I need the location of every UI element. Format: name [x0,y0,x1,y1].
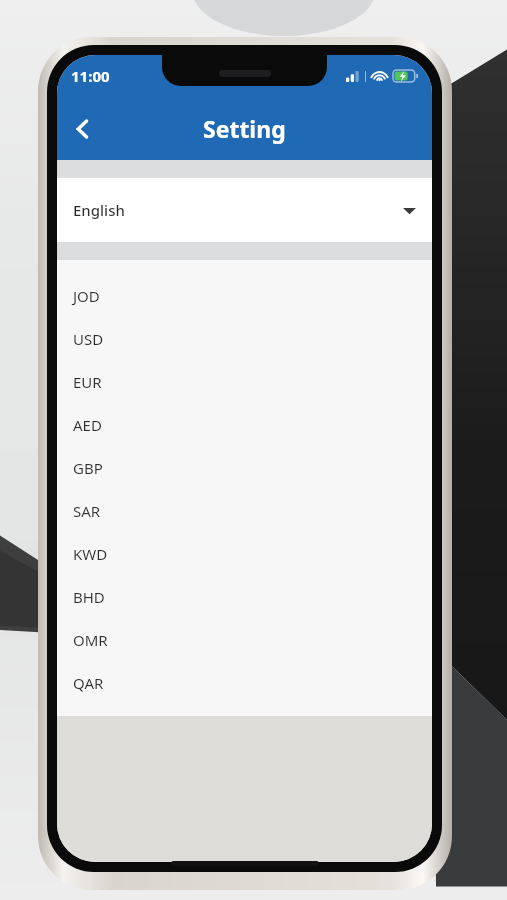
staticText: SAR [73,501,101,521]
button[interactable]: AED [57,403,432,446]
staticText: Setting [203,113,286,144]
button[interactable]: English [57,178,432,242]
staticText: BHD [73,587,105,607]
staticText: 11:00 [71,66,110,86]
button[interactable]: KWD [57,532,432,575]
button[interactable]: GBP [57,446,432,489]
staticText: GBP [73,458,103,478]
button[interactable]: Back [61,107,105,151]
staticText: KWD [73,544,108,564]
staticText: AED [73,415,102,435]
button[interactable]: OMR [57,618,432,661]
staticText: USD [73,329,104,349]
staticText: JOD [73,286,100,306]
button[interactable]: QAR [57,661,432,704]
staticText: QAR [73,673,104,693]
staticText: English [73,200,125,220]
button[interactable]: BHD [57,575,432,618]
button[interactable]: SAR [57,489,432,532]
staticText: EUR [73,372,102,392]
button[interactable]: JOD [57,274,432,317]
button[interactable]: USD [57,317,432,360]
staticText: OMR [73,630,108,650]
button[interactable]: EUR [57,360,432,403]
